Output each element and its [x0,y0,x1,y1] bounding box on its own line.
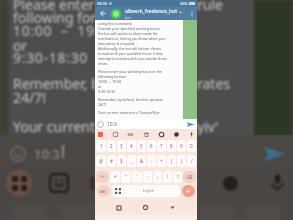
staticText: Your current timezone is 'Europe/Kyiv' [98,110,161,115]
button[interactable]: Settings [159,132,164,137]
button[interactable]: Send [262,142,286,166]
staticText: 10:00 – 19:0 [13,21,108,40]
button[interactable]: Stickers [49,173,69,193]
staticText: Please enter yo [13,0,114,14]
staticText: 7 [160,143,163,149]
button[interactable]: More options [188,7,196,20]
button[interactable]: 5 [137,140,146,152]
button[interactable]: Text edit [113,132,118,137]
button[interactable]: _ [127,155,136,167]
staticText: ' [136,174,138,180]
staticText: 4 [130,143,133,149]
button[interactable]: ' [132,171,142,183]
button[interactable]: Send [186,120,195,129]
staticText: ⌫ [186,175,193,180]
button[interactable]: - [147,155,156,167]
button[interactable]: Delete [144,132,149,137]
button[interactable]: English [112,185,180,197]
button[interactable]: Back [98,9,107,18]
staticText: ( [171,158,173,164]
staticText: bot [125,15,131,20]
button[interactable]: Clipboard [98,132,103,137]
button[interactable]: : [143,171,152,183]
staticText: notifications, letting you know when you… [98,36,166,41]
button[interactable]: ABC [97,185,110,197]
staticText: 6 [150,143,153,149]
staticText: 24/7! [13,88,46,107]
button[interactable]: Link [128,132,133,137]
button[interactable]: # [107,155,116,167]
staticText: ! [167,174,169,180]
button[interactable]: 0 [187,140,196,152]
staticText: attempt to interact with you outside the… [98,56,168,61]
staticText: ↵ [186,188,191,194]
button[interactable]: $ [117,155,126,167]
button[interactable]: Language [222,175,239,192]
button[interactable]: Theme [174,132,179,137]
button[interactable]: Home [143,205,148,210]
button[interactable]: 2 [107,140,116,152]
staticText: " [125,174,127,180]
staticText: @ [99,158,104,164]
staticText: Outside your specified working hours, [98,26,161,31]
button[interactable]: 3 [117,140,126,152]
button[interactable]: 8 [167,140,176,152]
button[interactable]: =\< [96,171,109,183]
button[interactable]: Voice [189,132,194,137]
button[interactable]: ; [153,171,162,183]
staticText: / [191,158,193,164]
staticText: - [151,158,153,164]
button[interactable]: @ [96,155,106,167]
staticText: : [147,174,149,180]
button[interactable]: Enter [182,185,195,197]
staticText: $ [120,158,123,164]
staticText: 9 [180,143,183,149]
button[interactable]: ( [167,155,176,167]
button[interactable]: Back [170,205,175,210]
button[interactable]: / [187,155,196,167]
staticText: * [114,174,117,180]
button[interactable]: 7 [157,140,166,152]
staticText: _ [131,158,133,164]
staticText: using this command. [98,21,133,26]
staticText: ; [157,174,159,180]
staticText: 9:30-18:30 [98,89,116,94]
button[interactable]: ) [177,155,186,167]
staticText: ? [177,174,179,180]
button[interactable]: Recents [117,206,121,210]
button[interactable]: & [137,155,146,167]
staticText: + [160,158,163,164]
staticText: times. [98,61,109,66]
button[interactable]: Emoji [97,121,104,128]
staticText: following format: [98,74,127,79]
button[interactable]: 6 [147,140,156,152]
button[interactable]: ? [173,171,182,183]
button[interactable]: Keyboard modes [6,170,32,196]
staticText: Remember, by [13,74,107,93]
button[interactable]: Voice input [268,173,287,192]
button[interactable]: Backspace [183,171,196,183]
staticText: & [140,158,144,164]
staticText: allwork_freelance_bot ⌄ [125,8,183,15]
staticText: 8 [170,143,173,149]
button[interactable]: 4 [127,140,136,152]
staticText: 0 [190,143,193,149]
staticText: rates [197,74,231,93]
button[interactable]: * [110,171,120,183]
button[interactable]: " [121,171,131,183]
staticText: 1 [100,143,103,149]
staticText: Your current tim [13,117,121,136]
button[interactable]: ! [163,171,172,183]
staticText: or [98,84,102,89]
staticText: 3 [120,143,123,149]
staticText: or [13,36,28,55]
staticText: 24/7! [98,102,107,107]
staticText: 9:30-18:30 [13,48,89,67]
staticText: Remember, by default, the bot operates [98,97,164,102]
staticText: rule [197,0,223,14]
button[interactable]: 1 [96,140,106,152]
staticText: English [143,189,154,193]
button[interactable]: 9 [177,140,186,152]
button[interactable]: + [157,155,166,167]
staticText: 46% [180,1,188,6]
